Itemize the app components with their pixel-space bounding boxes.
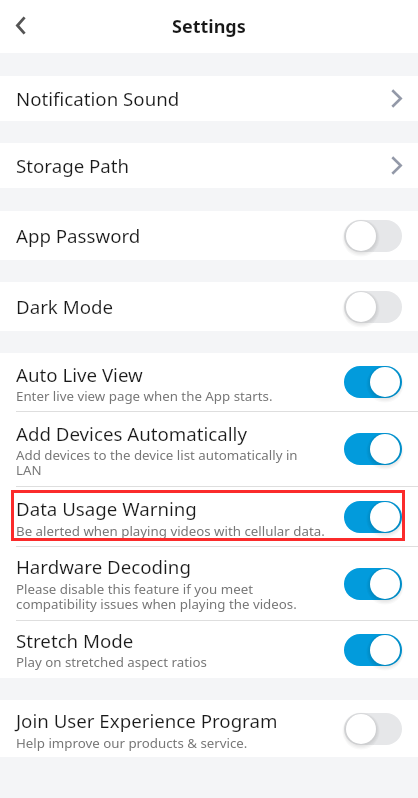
button[interactable]: Add Devices Automatically, on: [344, 431, 402, 467]
staticText: Please disable this feature if you meet …: [16, 582, 297, 612]
button[interactable]: Data Usage Warning: [0, 487, 418, 546]
staticText: Enter live view page when the App starts…: [16, 389, 273, 404]
button[interactable]: Add Devices Automatically: [0, 412, 418, 486]
button[interactable]: Join User Experience Program, off: [344, 711, 402, 747]
staticText: Add Devices Automatically: [16, 421, 247, 446]
button[interactable]: App Password: [0, 211, 418, 260]
staticText: Hardware Decoding: [16, 554, 191, 579]
staticText: Dark Mode: [16, 294, 113, 319]
button[interactable]: Join User Experience Program: [0, 700, 418, 757]
button[interactable]: Back: [0, 0, 42, 50]
staticText: Play on stretched aspect ratios: [16, 655, 207, 670]
button[interactable]: Stretch Mode: [0, 621, 418, 678]
staticText: Stretch Mode: [16, 628, 134, 653]
staticText: Auto Live View: [16, 362, 143, 387]
staticText: Storage Path: [16, 153, 130, 178]
button[interactable]: App Password, off: [344, 218, 402, 254]
button[interactable]: Auto Live View: [0, 353, 418, 411]
staticText: Help improve our products & service.: [16, 736, 248, 751]
button[interactable]: Stretch Mode, on: [344, 632, 402, 668]
staticText: Settings: [172, 14, 246, 39]
button[interactable]: Dark Mode: [0, 282, 418, 331]
staticText: Be alerted when playing videos with cell…: [16, 524, 325, 539]
button[interactable]: Hardware Decoding, on: [344, 566, 402, 602]
staticText: Add devices to the device list automatic…: [16, 448, 298, 478]
button[interactable]: Data Usage Warning, on: [344, 499, 402, 535]
staticText: Notification Sound: [16, 86, 180, 111]
button[interactable]: Auto Live View, on: [344, 364, 402, 400]
staticText: Data Usage Warning: [16, 496, 197, 521]
button[interactable]: Hardware Decoding: [0, 547, 418, 620]
button[interactable]: Storage Path: [0, 143, 418, 188]
staticText: App Password: [16, 223, 141, 248]
staticText: Join User Experience Program: [16, 708, 278, 733]
button[interactable]: Dark Mode, off: [344, 289, 402, 325]
button[interactable]: Notification Sound: [0, 76, 418, 121]
